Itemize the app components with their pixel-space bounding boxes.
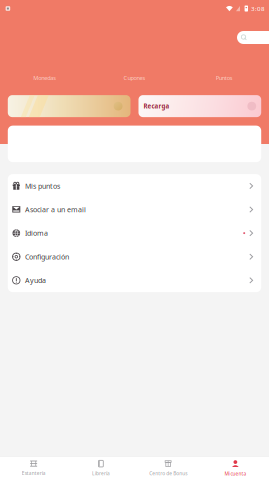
staticText: Centro de Bonus — [149, 470, 187, 477]
staticText: Idioma — [25, 228, 48, 238]
staticText: Ayuda — [25, 275, 46, 285]
staticText: Monedas — [33, 74, 56, 82]
button[interactable]: Ayuda — [8, 268, 261, 292]
button[interactable]: Recarga — [138, 95, 261, 117]
button[interactable]: Mis puntos — [8, 174, 261, 198]
button[interactable]: Configuración — [8, 245, 261, 268]
staticText: Mis puntos — [25, 181, 60, 191]
button[interactable]: Asociar a un email — [8, 198, 261, 221]
button[interactable]: Monedas — [0, 74, 90, 82]
staticText: 3:08 — [251, 4, 265, 13]
staticText: Recarga — [143, 102, 169, 110]
button[interactable]: Search — [237, 31, 269, 44]
button[interactable]: Librería — [67, 457, 134, 480]
staticText: Mi cuenta — [224, 470, 246, 477]
staticText: Estantería — [22, 470, 46, 476]
staticText: Cupones — [123, 74, 145, 82]
staticText: Librería — [92, 470, 110, 477]
button[interactable] — [8, 95, 130, 117]
staticText: Configuración — [25, 252, 69, 261]
button[interactable]: Centro de Bonus — [134, 457, 202, 480]
button[interactable]: Mi cuenta — [202, 457, 269, 480]
button[interactable]: Puntos — [179, 74, 269, 82]
button[interactable]: Estantería — [0, 457, 67, 480]
button[interactable]: Idioma — [8, 221, 261, 245]
staticText: Asociar a un email — [25, 205, 86, 214]
button[interactable]: Cupones — [90, 74, 179, 82]
staticText: Puntos — [216, 74, 233, 82]
